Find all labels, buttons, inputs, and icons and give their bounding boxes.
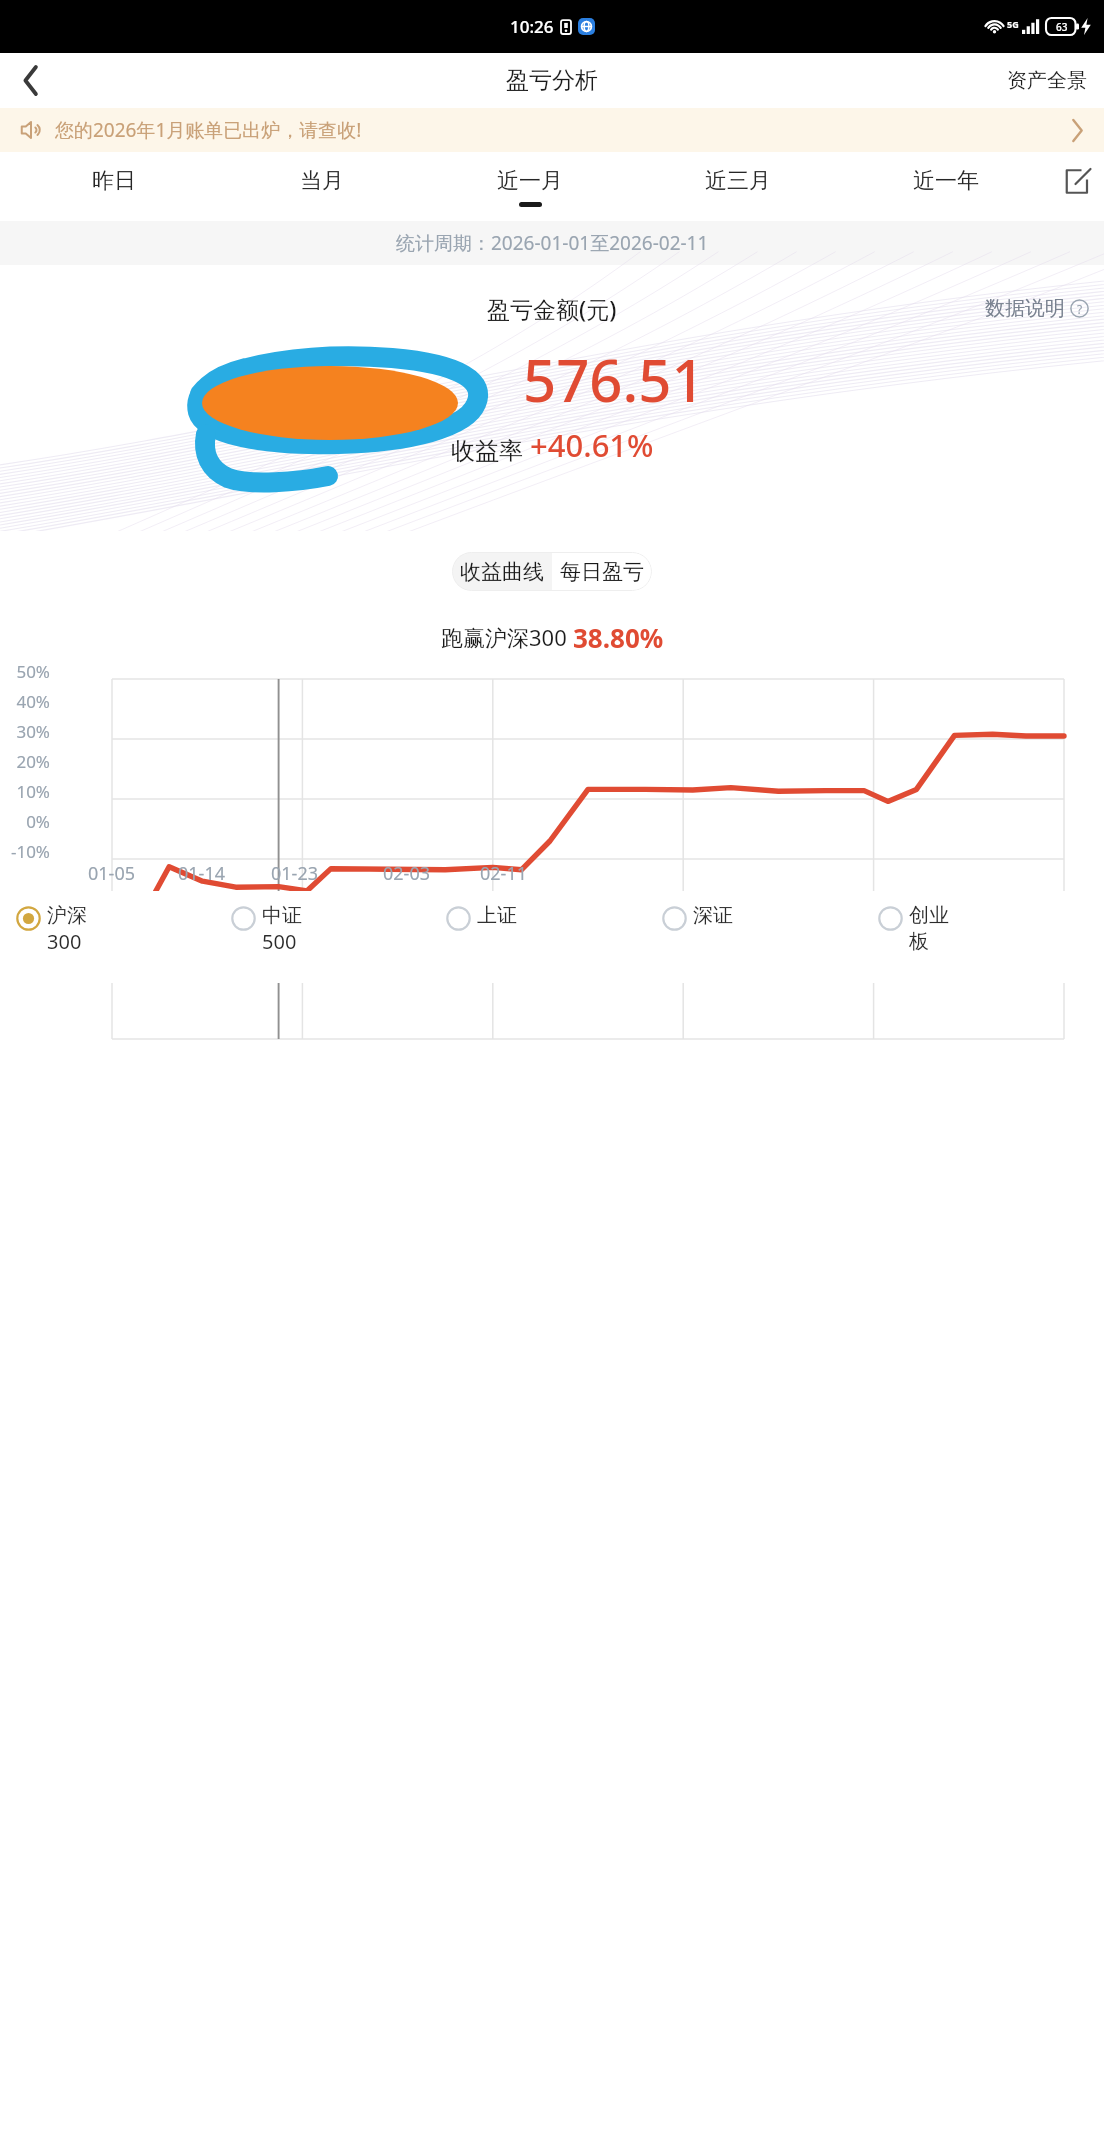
staticText: 统计周期：2026-01-01至2026-02-11	[396, 230, 709, 256]
staticText: 沪深 300	[47, 903, 87, 955]
staticText: 5G	[1007, 18, 1019, 30]
staticText: 20%	[16, 750, 50, 773]
staticText: 收益曲线	[460, 559, 544, 585]
staticText: 上证	[477, 903, 517, 928]
staticText: 创业 板	[909, 903, 949, 954]
staticText: -10%	[10, 840, 50, 863]
button[interactable]: Edit tabs	[1050, 152, 1104, 221]
staticText: 576.51	[523, 340, 705, 419]
staticText: 资产全景	[1007, 68, 1087, 93]
button[interactable]: 当月	[218, 152, 426, 221]
staticText: 01-14	[178, 861, 225, 886]
staticText: 收益率	[451, 433, 530, 466]
button[interactable]: 近三月	[634, 152, 842, 221]
staticText: 近一年	[913, 167, 979, 195]
staticText: 近三月	[705, 167, 771, 195]
staticText: 30%	[16, 720, 50, 743]
staticText: 0%	[26, 810, 50, 833]
button[interactable]: 资产全景	[990, 53, 1104, 108]
button[interactable]: 沪深 300	[16, 903, 231, 983]
button[interactable]: 数据说明	[985, 296, 1089, 321]
staticText: 盈亏金额(元)	[487, 293, 617, 324]
staticText: ?	[1077, 301, 1083, 317]
staticText: 02-03	[383, 861, 430, 886]
staticText: 数据说明	[985, 296, 1065, 321]
staticText: 深证	[693, 903, 733, 928]
staticText: 38.80%	[573, 620, 664, 655]
button[interactable]: 近一月	[426, 152, 634, 221]
button[interactable]: Back	[0, 53, 62, 108]
button[interactable]: 深证	[662, 903, 878, 983]
button[interactable]: 近一年	[842, 152, 1050, 221]
staticText: 当月	[300, 167, 344, 195]
staticText: 昨日	[92, 167, 136, 195]
staticText: 02-11	[480, 861, 527, 886]
staticText: 10:26	[510, 15, 554, 38]
staticText: 近一月	[497, 167, 563, 195]
staticText: 01-05	[88, 861, 135, 886]
staticText: +40.61%	[530, 424, 654, 466]
staticText: 10%	[16, 780, 50, 803]
staticText: 63	[1056, 20, 1068, 34]
button[interactable]: 中证 500	[231, 903, 446, 983]
staticText: 跑赢沪深300	[441, 622, 573, 652]
staticText: 每日盈亏	[560, 559, 644, 585]
staticText: 40%	[16, 690, 50, 713]
button[interactable]: 上证	[446, 903, 662, 983]
staticText: 您的2026年1月账单已出炉，请查收!	[55, 117, 362, 143]
button[interactable]: 创业 板	[878, 903, 1094, 983]
staticText: 中证 500	[262, 903, 302, 955]
button[interactable]: 您的2026年1月账单已出炉，请查收!	[0, 108, 1104, 152]
button[interactable]: 昨日	[10, 152, 218, 221]
staticText: 01-23	[271, 861, 318, 886]
staticText: 50%	[16, 660, 50, 683]
button[interactable]: 收益曲线	[452, 552, 552, 591]
button[interactable]: 每日盈亏	[552, 552, 652, 591]
staticText: 盈亏分析	[506, 66, 598, 95]
